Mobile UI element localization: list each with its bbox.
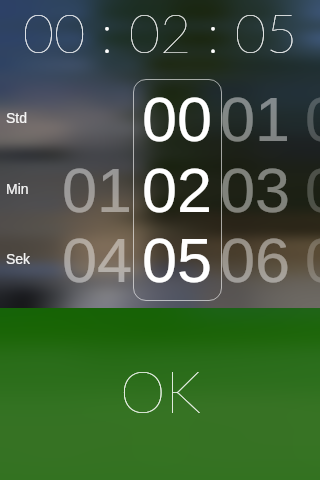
staticText: 07 — [300, 225, 320, 295]
button[interactable]: 05 — [137, 225, 217, 295]
staticText: Min — [6, 181, 29, 197]
staticText: Std — [6, 110, 28, 126]
button[interactable]: 04 — [57, 225, 137, 295]
button[interactable]: 06 — [215, 225, 295, 295]
staticText: 04 — [300, 155, 320, 225]
staticText: Sek — [6, 251, 31, 267]
staticText: 02 — [300, 84, 320, 154]
button[interactable] — [57, 84, 137, 156]
button[interactable]: 03 — [215, 155, 295, 225]
button[interactable]: 00 — [137, 84, 217, 154]
staticText: OK — [120, 356, 201, 426]
button[interactable]: 01 — [215, 84, 295, 154]
button[interactable]: 02 — [137, 155, 217, 225]
button[interactable]: OK — [0, 308, 320, 480]
button[interactable]: Selected value — [133, 79, 222, 301]
staticText: 00 : 02 : 05 — [0, 0, 320, 65]
button[interactable]: 01 — [57, 155, 137, 225]
